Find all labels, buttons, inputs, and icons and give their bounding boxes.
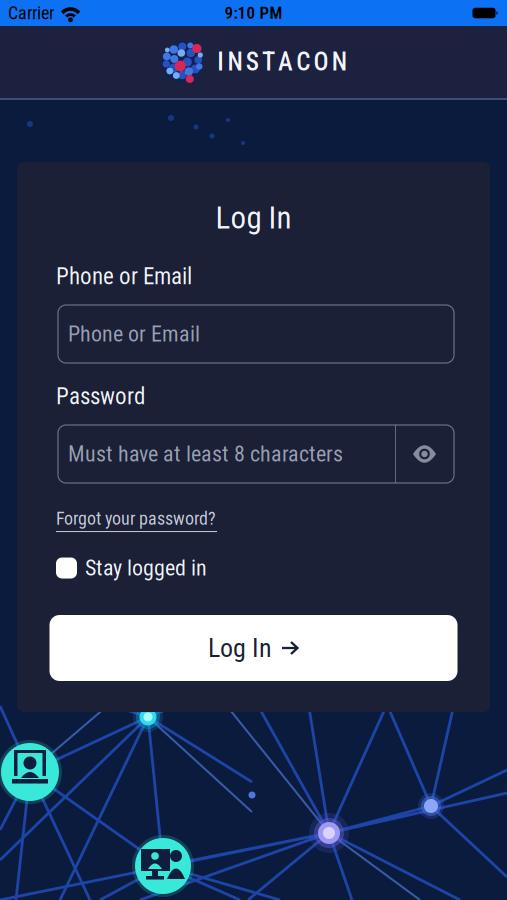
staticText: S	[246, 47, 259, 77]
staticText: Phone or Email	[56, 263, 192, 290]
staticText: 9:10 PM	[224, 3, 282, 23]
staticText: T	[262, 47, 275, 77]
staticText: N	[227, 47, 242, 77]
staticText: Carrier	[8, 2, 54, 24]
staticText: Phone or Email	[68, 321, 200, 347]
staticText: Stay logged in	[85, 555, 207, 581]
staticText: I	[217, 47, 224, 77]
staticText: N	[332, 47, 347, 77]
staticText: A	[278, 47, 293, 77]
staticText: O	[313, 47, 328, 77]
staticText: C	[296, 47, 310, 77]
staticText: Forgot your password?	[56, 508, 216, 529]
staticText: Log In	[208, 633, 272, 663]
staticText: Password	[56, 383, 145, 410]
staticText: Log In	[215, 200, 291, 236]
staticText: Must have at least 8 characters	[68, 441, 343, 467]
